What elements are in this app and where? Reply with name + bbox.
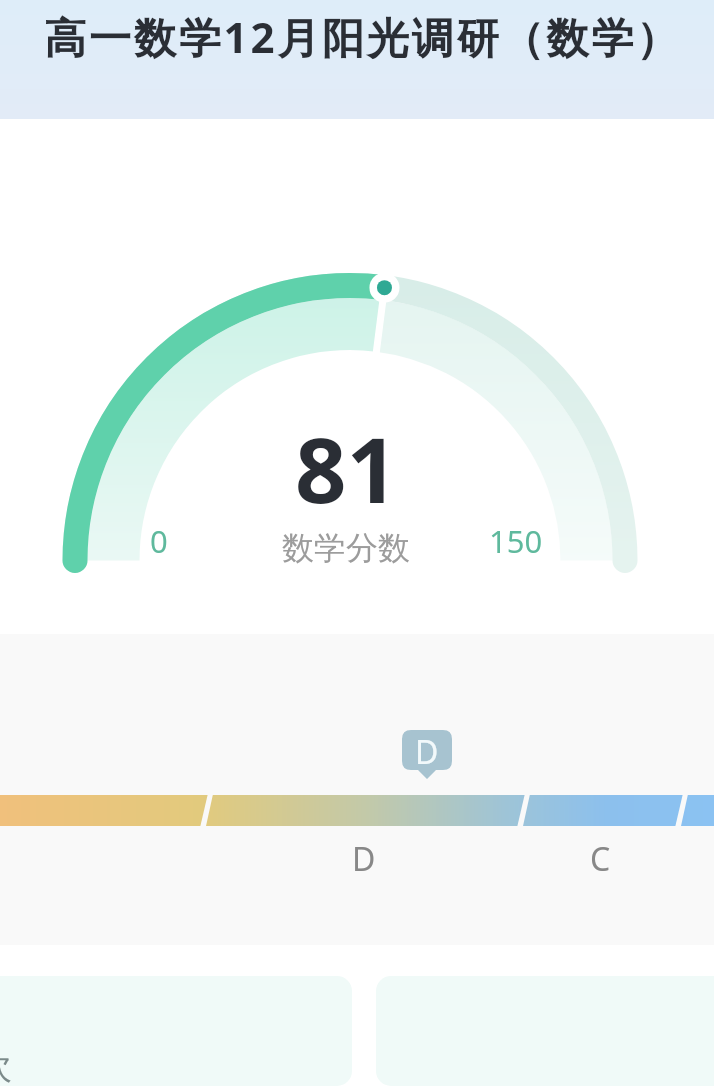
- staticText: D: [415, 730, 439, 774]
- staticText: 150: [489, 520, 543, 562]
- button[interactable]: 次: [0, 976, 352, 1086]
- button[interactable]: 高一数学12月阳光调研（数学）: [0, 0, 714, 119]
- staticText: D: [352, 837, 376, 881]
- staticText: 81: [295, 407, 398, 530]
- button[interactable]: Current grade D: [402, 730, 452, 780]
- staticText: 次: [0, 1046, 12, 1086]
- staticText: 数学分数: [282, 528, 410, 568]
- staticText: C: [590, 837, 611, 881]
- staticText: 0: [150, 520, 168, 562]
- staticText: 高一数学12月阳光调研（数学）: [44, 8, 681, 65]
